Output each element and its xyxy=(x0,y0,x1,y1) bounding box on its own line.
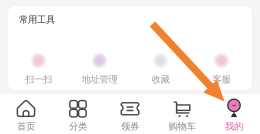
button[interactable]: 收藏 xyxy=(130,52,191,85)
staticText: 领券 xyxy=(121,121,139,132)
staticText: 扫一扫 xyxy=(25,73,52,85)
staticText: 首页 xyxy=(17,121,35,132)
button[interactable]: 购物车 xyxy=(156,95,208,132)
button[interactable]: 我的 xyxy=(208,95,260,132)
button[interactable]: 首页 xyxy=(0,95,52,132)
staticText: 分类 xyxy=(69,121,87,132)
button[interactable]: 分类 xyxy=(52,95,104,132)
button[interactable]: 领券 xyxy=(104,95,156,132)
staticText: 我的 xyxy=(225,121,243,132)
staticText: 客服 xyxy=(212,73,230,85)
staticText: 收藏 xyxy=(151,73,169,85)
button[interactable]: 客服 xyxy=(191,52,252,85)
staticText: 购物车 xyxy=(168,121,195,132)
button[interactable]: 扫一扫 xyxy=(8,52,69,85)
button[interactable]: 地址管理 xyxy=(69,52,130,85)
staticText: 地址管理 xyxy=(81,73,117,85)
staticText: 常用工具 xyxy=(19,14,55,25)
